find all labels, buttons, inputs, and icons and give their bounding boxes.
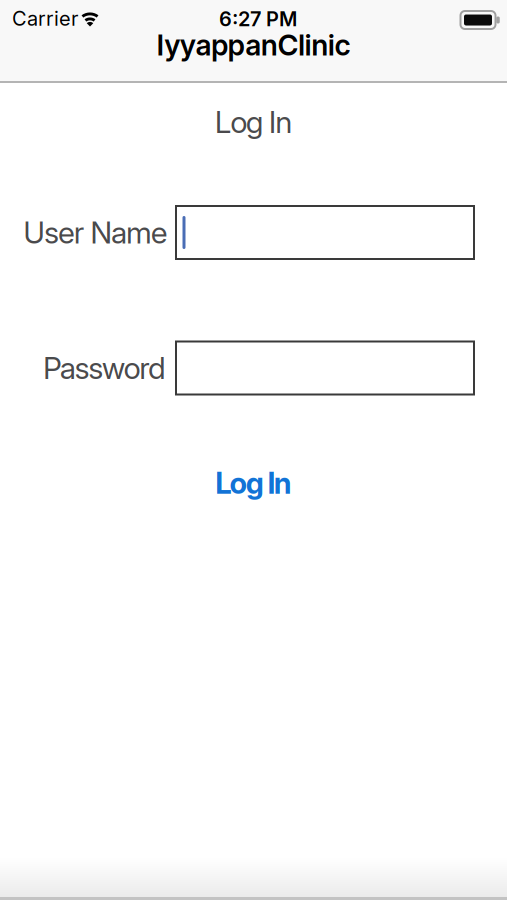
button[interactable]: Log In	[215, 465, 292, 501]
staticText: 6:27 PM	[219, 7, 297, 31]
staticText: Log In	[215, 465, 292, 501]
button[interactable]: User Name	[176, 206, 474, 259]
button[interactable]: Password	[176, 341, 474, 394]
staticText: Password	[43, 350, 166, 386]
staticText: Carrier	[12, 6, 78, 31]
staticText: IyyappanClinic	[157, 28, 350, 62]
staticText: Log In	[215, 104, 292, 140]
staticText: User Name	[23, 214, 168, 251]
